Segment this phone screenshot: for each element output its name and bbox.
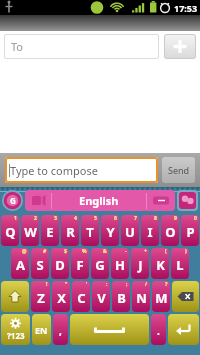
staticText: 7 <box>134 215 137 222</box>
staticText: E <box>46 223 54 241</box>
staticText: T <box>86 223 94 241</box>
button[interactable]: ) <box>171 248 189 279</box>
staticText: W <box>24 223 37 241</box>
button[interactable]: Backspace <box>172 281 199 312</box>
button[interactable]: ( <box>151 248 169 279</box>
staticText: 6 <box>114 215 117 222</box>
staticText: Type to compose <box>10 163 98 178</box>
staticText: @ <box>22 248 27 255</box>
staticText: J <box>138 256 143 274</box>
staticText: G <box>10 195 16 206</box>
button[interactable]: @ <box>11 248 29 279</box>
button[interactable]: : <box>92 281 110 312</box>
button[interactable]: + <box>131 248 149 279</box>
staticText: ?123 <box>7 330 25 341</box>
staticText: Z <box>37 289 45 307</box>
staticText: English <box>79 193 119 208</box>
staticText: H <box>115 256 125 274</box>
button[interactable]: - <box>111 248 129 279</box>
staticText: C <box>77 289 86 307</box>
button[interactable]: Theme <box>177 190 198 211</box>
staticText: 4 <box>74 215 77 222</box>
button[interactable]: $ <box>51 248 69 279</box>
button[interactable]: Type to compose <box>5 157 158 183</box>
staticText: I <box>147 223 153 241</box>
staticText: K <box>156 256 165 274</box>
button[interactable]: % <box>71 248 89 279</box>
staticText: O <box>165 223 176 241</box>
staticText: 3 <box>54 215 57 222</box>
button[interactable]: ' <box>72 281 90 312</box>
staticText: D <box>55 256 65 274</box>
staticText: 1 <box>14 215 17 222</box>
button[interactable]: To <box>4 34 159 59</box>
staticText: L <box>176 256 184 274</box>
button[interactable]: Enter <box>168 314 199 345</box>
staticText: & <box>103 248 107 255</box>
button[interactable]: 0 <box>181 215 199 246</box>
staticText: Q <box>5 223 16 241</box>
button[interactable]: Add recipient <box>164 34 196 59</box>
button[interactable]: ! <box>31 281 50 312</box>
staticText: 8 <box>154 215 157 222</box>
staticText: 9 <box>174 215 177 222</box>
staticText: EN <box>35 324 48 336</box>
staticText: - <box>125 248 127 255</box>
staticText: # <box>43 248 47 255</box>
button[interactable]: Keyboard settings <box>2 190 23 211</box>
staticText: % <box>82 248 87 255</box>
button[interactable]: ?123 <box>1 314 30 345</box>
staticText: / <box>145 281 148 288</box>
button[interactable]: 6 <box>101 215 119 246</box>
button[interactable]: 8 <box>141 215 159 246</box>
button[interactable]: 4 <box>61 215 79 246</box>
button[interactable]: Send <box>162 157 195 183</box>
button[interactable]: ? <box>152 281 170 312</box>
staticText: 2 <box>34 215 37 222</box>
button[interactable]: ; <box>112 281 130 312</box>
staticText: To <box>11 39 24 54</box>
staticText: ? <box>165 281 168 288</box>
staticText: U <box>125 223 135 241</box>
staticText: F <box>76 256 84 274</box>
button[interactable]: , <box>53 314 68 345</box>
staticText: 0 <box>194 215 197 222</box>
staticText: " <box>65 281 68 288</box>
button[interactable]: Shift <box>1 281 29 312</box>
button[interactable]: 2 <box>21 215 39 246</box>
staticText: , <box>59 324 62 338</box>
staticText: M <box>155 289 168 307</box>
staticText: $ <box>64 248 67 255</box>
button[interactable]: 3 <box>41 215 59 246</box>
staticText: : <box>106 281 108 288</box>
staticText: ; <box>126 281 128 288</box>
staticText: ) <box>185 248 187 255</box>
button[interactable]: # <box>31 248 49 279</box>
staticText: ' <box>86 281 88 288</box>
button[interactable]: Hide keyboard <box>147 190 175 211</box>
staticText: ! <box>46 281 48 288</box>
staticText: 5 <box>94 215 97 222</box>
button[interactable]: EN <box>32 314 51 345</box>
staticText: X <box>57 289 66 307</box>
button[interactable]: English <box>52 190 146 211</box>
button[interactable]: & <box>91 248 109 279</box>
staticText: + <box>144 248 147 255</box>
button[interactable]: " <box>52 281 70 312</box>
staticText: N <box>136 289 147 307</box>
button[interactable]: Space <box>70 314 149 345</box>
button[interactable]: 5 <box>81 215 99 246</box>
button[interactable]: 1 <box>1 215 19 246</box>
button[interactable]: Voice input <box>25 190 51 211</box>
staticText: 17:53 <box>174 2 198 14</box>
staticText: Y <box>106 223 115 241</box>
staticText: S <box>36 256 44 274</box>
button[interactable]: / <box>132 281 150 312</box>
button[interactable]: 7 <box>121 215 139 246</box>
button[interactable]: 9 <box>161 215 179 246</box>
staticText: A <box>16 256 25 274</box>
staticText: ( <box>165 248 167 255</box>
staticText: R <box>66 223 75 241</box>
button[interactable]: . <box>151 314 166 345</box>
staticText: P <box>186 223 195 241</box>
